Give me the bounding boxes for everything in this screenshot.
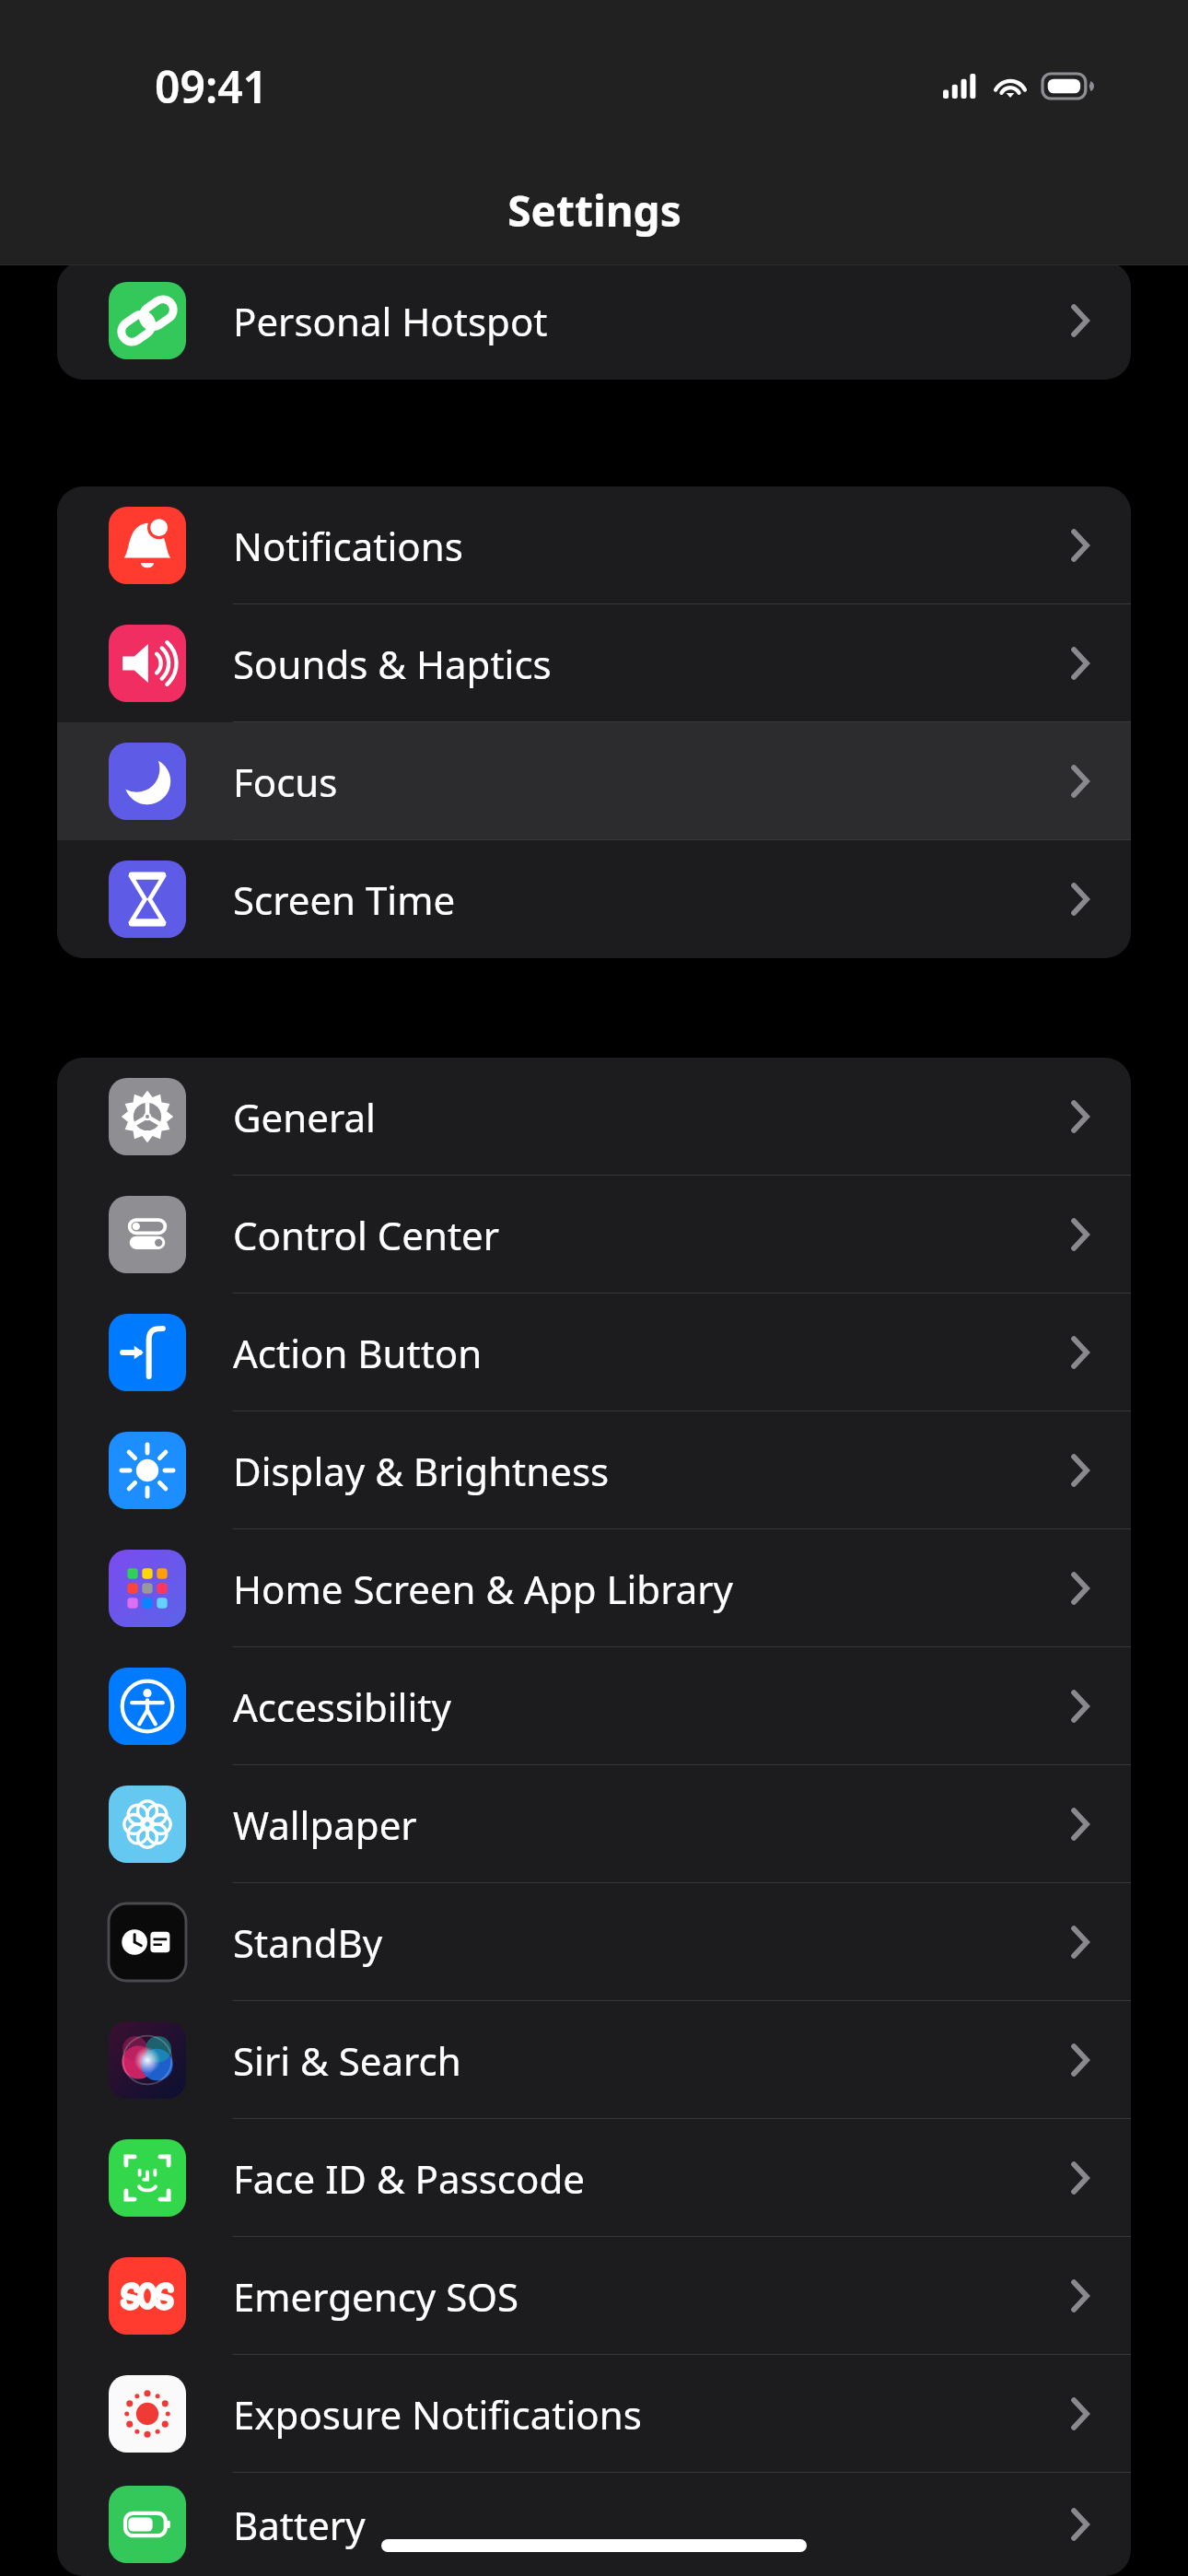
staticText: Exposure Notifications — [233, 2388, 1070, 2441]
staticText: Settings — [507, 181, 681, 240]
button[interactable]: StandBy — [57, 1883, 1131, 2001]
staticText: Notifications — [233, 520, 1070, 572]
button[interactable]: Battery — [57, 2473, 1131, 2576]
staticText: Home Screen & App Library — [233, 1563, 1070, 1615]
button[interactable]: Wallpaper — [57, 1765, 1131, 1883]
button[interactable]: Siri & Search — [57, 2001, 1131, 2119]
button[interactable]: Display & Brightness — [57, 1411, 1131, 1529]
staticText: StandBy — [233, 1916, 1070, 1969]
button[interactable]: Exposure Notifications — [57, 2355, 1131, 2473]
staticText: Sounds & Haptics — [233, 638, 1070, 690]
staticText: Personal Hotspot — [233, 295, 1070, 347]
other: Battery — [1042, 74, 1090, 99]
button[interactable]: Accessibility — [57, 1647, 1131, 1765]
staticText: Focus — [233, 755, 1070, 808]
button[interactable]: Sounds & Haptics — [57, 604, 1131, 722]
button[interactable]: Screen Time — [57, 840, 1131, 958]
staticText: Display & Brightness — [233, 1445, 1070, 1497]
staticText: Siri & Search — [233, 2034, 1070, 2087]
other: Cellular signal — [943, 74, 978, 99]
staticText: Screen Time — [233, 873, 1070, 926]
staticText: General — [233, 1091, 1070, 1143]
staticText: Face ID & Passcode — [233, 2152, 1070, 2205]
staticText: Battery — [233, 2499, 1070, 2551]
button[interactable]: Emergency SOS — [57, 2237, 1131, 2355]
staticText: 09:41 — [155, 56, 269, 116]
button[interactable]: Focus — [57, 722, 1131, 840]
staticText: Emergency SOS — [233, 2270, 1070, 2323]
button[interactable]: Control Center — [57, 1176, 1131, 1294]
button[interactable]: General — [57, 1058, 1131, 1176]
staticText: Wallpaper — [233, 1798, 1070, 1851]
staticText: Action Button — [233, 1327, 1070, 1379]
button[interactable]: Home Screen & App Library — [57, 1529, 1131, 1647]
button[interactable]: Personal Hotspot — [57, 265, 1131, 380]
staticText: Control Center — [233, 1209, 1070, 1261]
staticText: Accessibility — [233, 1680, 1070, 1733]
other: Wi-Fi — [994, 74, 1027, 99]
button[interactable]: Action Button — [57, 1294, 1131, 1411]
button[interactable]: Notifications — [57, 486, 1131, 604]
button[interactable]: Face ID & Passcode — [57, 2119, 1131, 2237]
